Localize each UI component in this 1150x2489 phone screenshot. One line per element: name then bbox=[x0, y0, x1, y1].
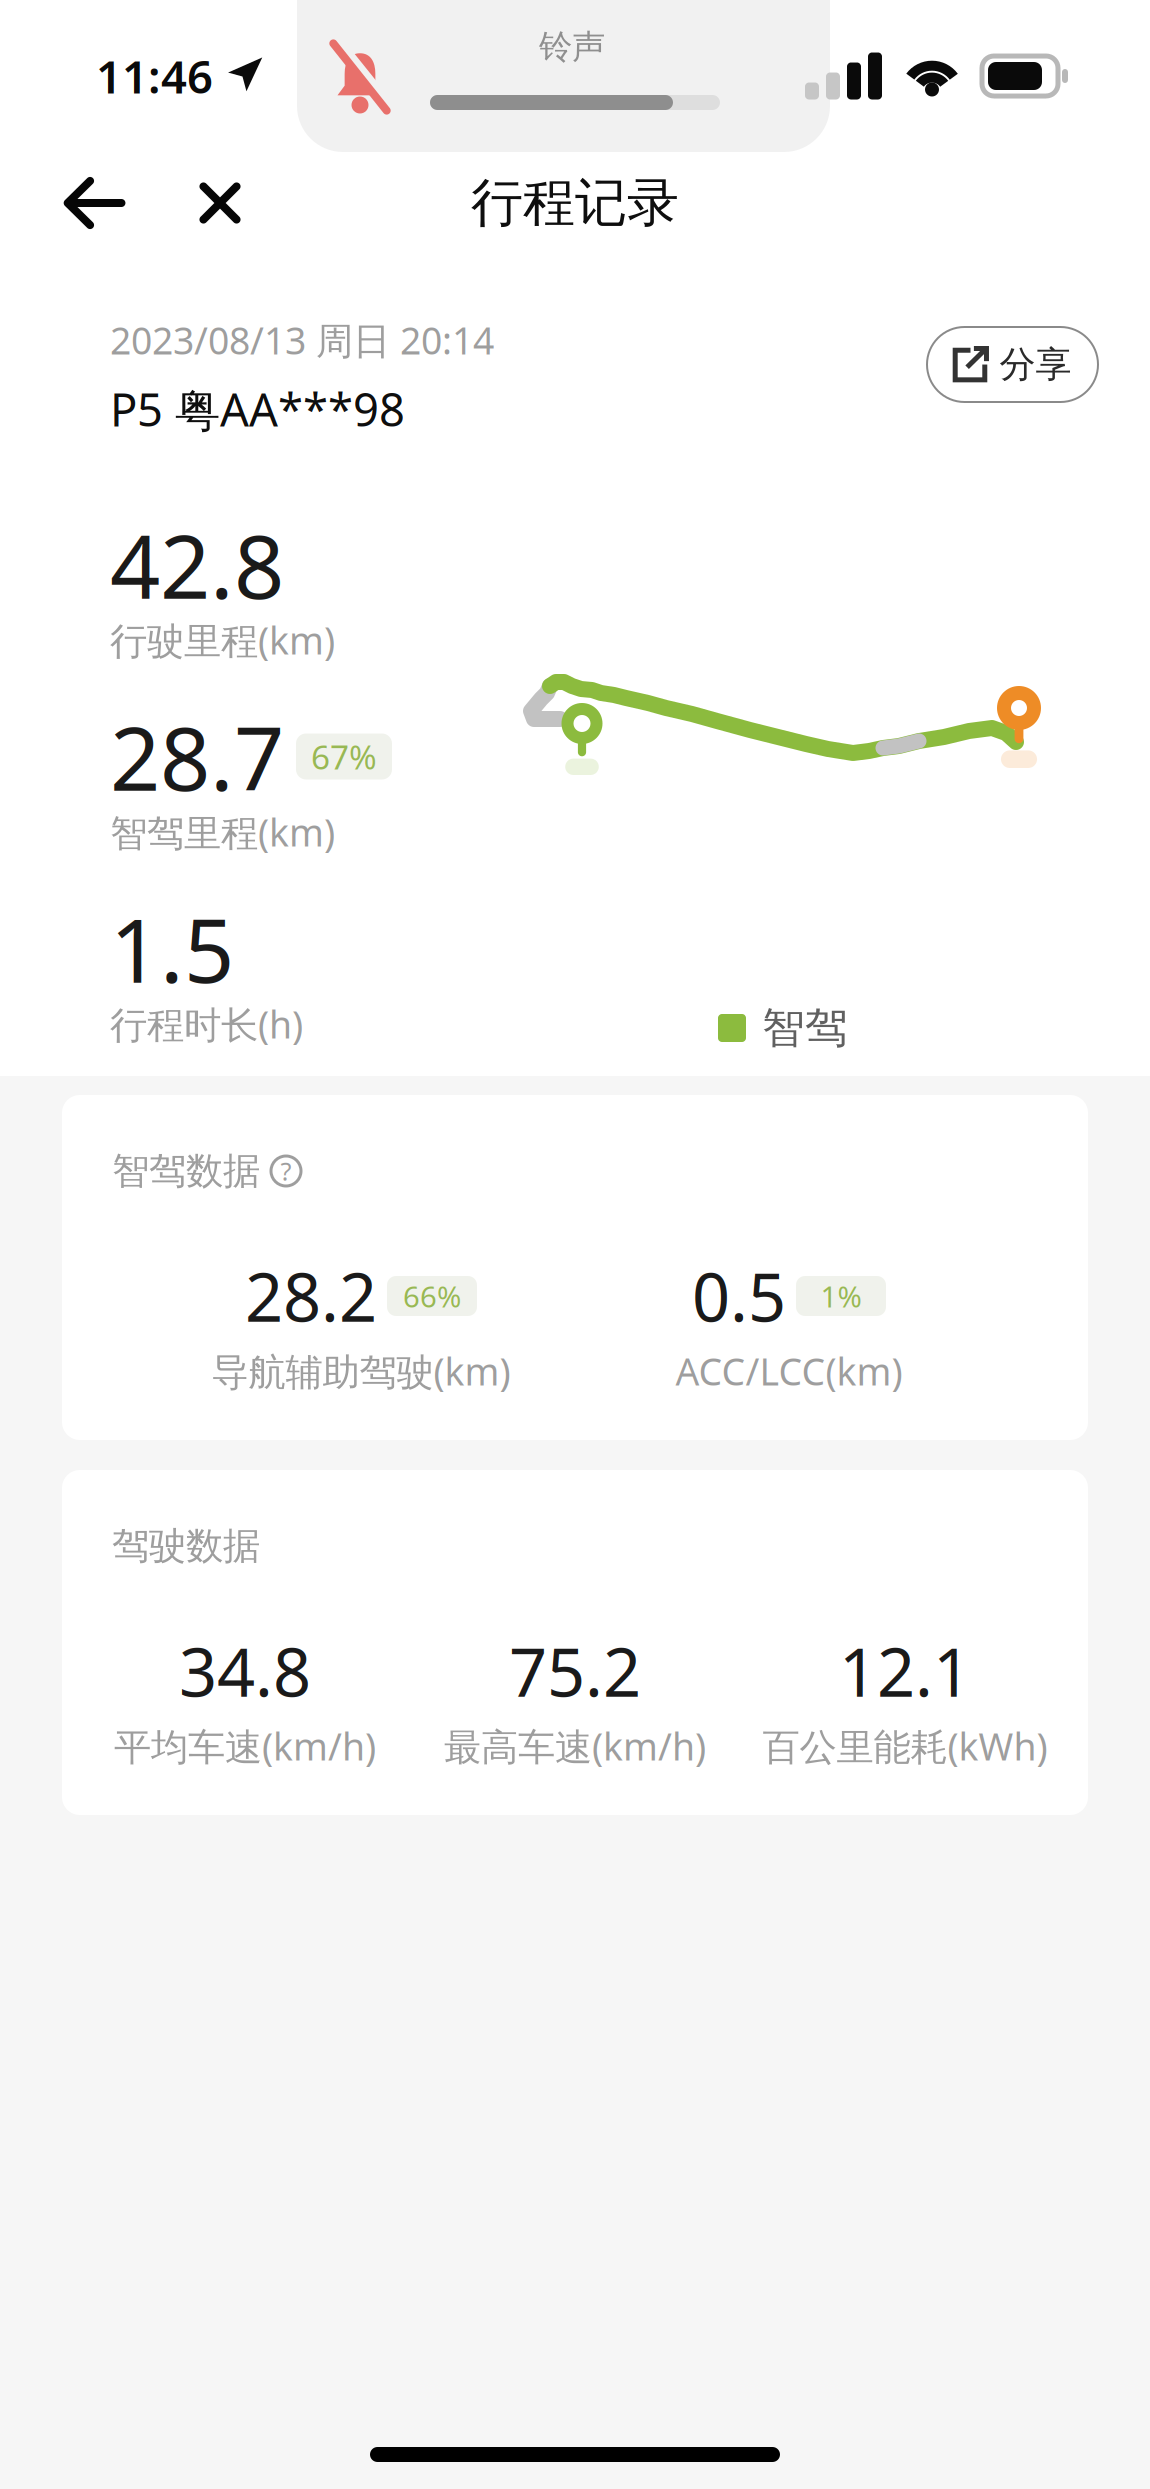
staticText: 42.8 bbox=[110, 505, 284, 624]
staticText: 28.7 bbox=[110, 697, 284, 816]
staticText: 12.1 bbox=[839, 1626, 971, 1716]
staticText: 智驾里程(km) bbox=[110, 807, 335, 857]
staticText: 11:46 bbox=[96, 45, 213, 107]
staticText: 1.5 bbox=[110, 889, 234, 1008]
staticText: 平均车速(km/h) bbox=[114, 1721, 376, 1771]
button[interactable]: 返回 bbox=[48, 153, 140, 253]
staticText: 2023/08/13 周日 20:14 bbox=[110, 315, 494, 365]
staticText: 铃声 bbox=[539, 26, 605, 68]
staticText: 智驾 bbox=[762, 1001, 848, 1055]
staticText: 34.8 bbox=[179, 1626, 311, 1716]
staticText: 百公里能耗(kWh) bbox=[762, 1721, 1047, 1771]
staticText: 1% bbox=[820, 1276, 861, 1316]
staticText: 0.5 bbox=[692, 1251, 786, 1341]
staticText: 智驾数据 bbox=[112, 1147, 260, 1194]
staticText: 驾驶数据 bbox=[112, 1522, 260, 1569]
staticText: 行驶里程(km) bbox=[110, 615, 335, 665]
staticText: 行程时长(h) bbox=[110, 999, 303, 1049]
staticText: 66% bbox=[403, 1276, 461, 1316]
button[interactable]: 关闭 bbox=[172, 153, 268, 253]
staticText: 75.2 bbox=[509, 1626, 641, 1716]
staticText: 行程记录 bbox=[471, 170, 679, 236]
staticText: 最高车速(km/h) bbox=[444, 1721, 706, 1771]
staticText: 28.2 bbox=[245, 1251, 377, 1341]
staticText: ? bbox=[280, 1154, 291, 1188]
staticText: P5 粤AA***98 bbox=[110, 378, 405, 440]
staticText: 导航辅助驾驶(km) bbox=[211, 1346, 510, 1396]
staticText: 分享 bbox=[999, 342, 1071, 387]
staticText: 67% bbox=[311, 734, 377, 779]
button[interactable]: 分享 bbox=[927, 327, 1098, 402]
staticText: ACC/LCC(km) bbox=[675, 1346, 902, 1396]
